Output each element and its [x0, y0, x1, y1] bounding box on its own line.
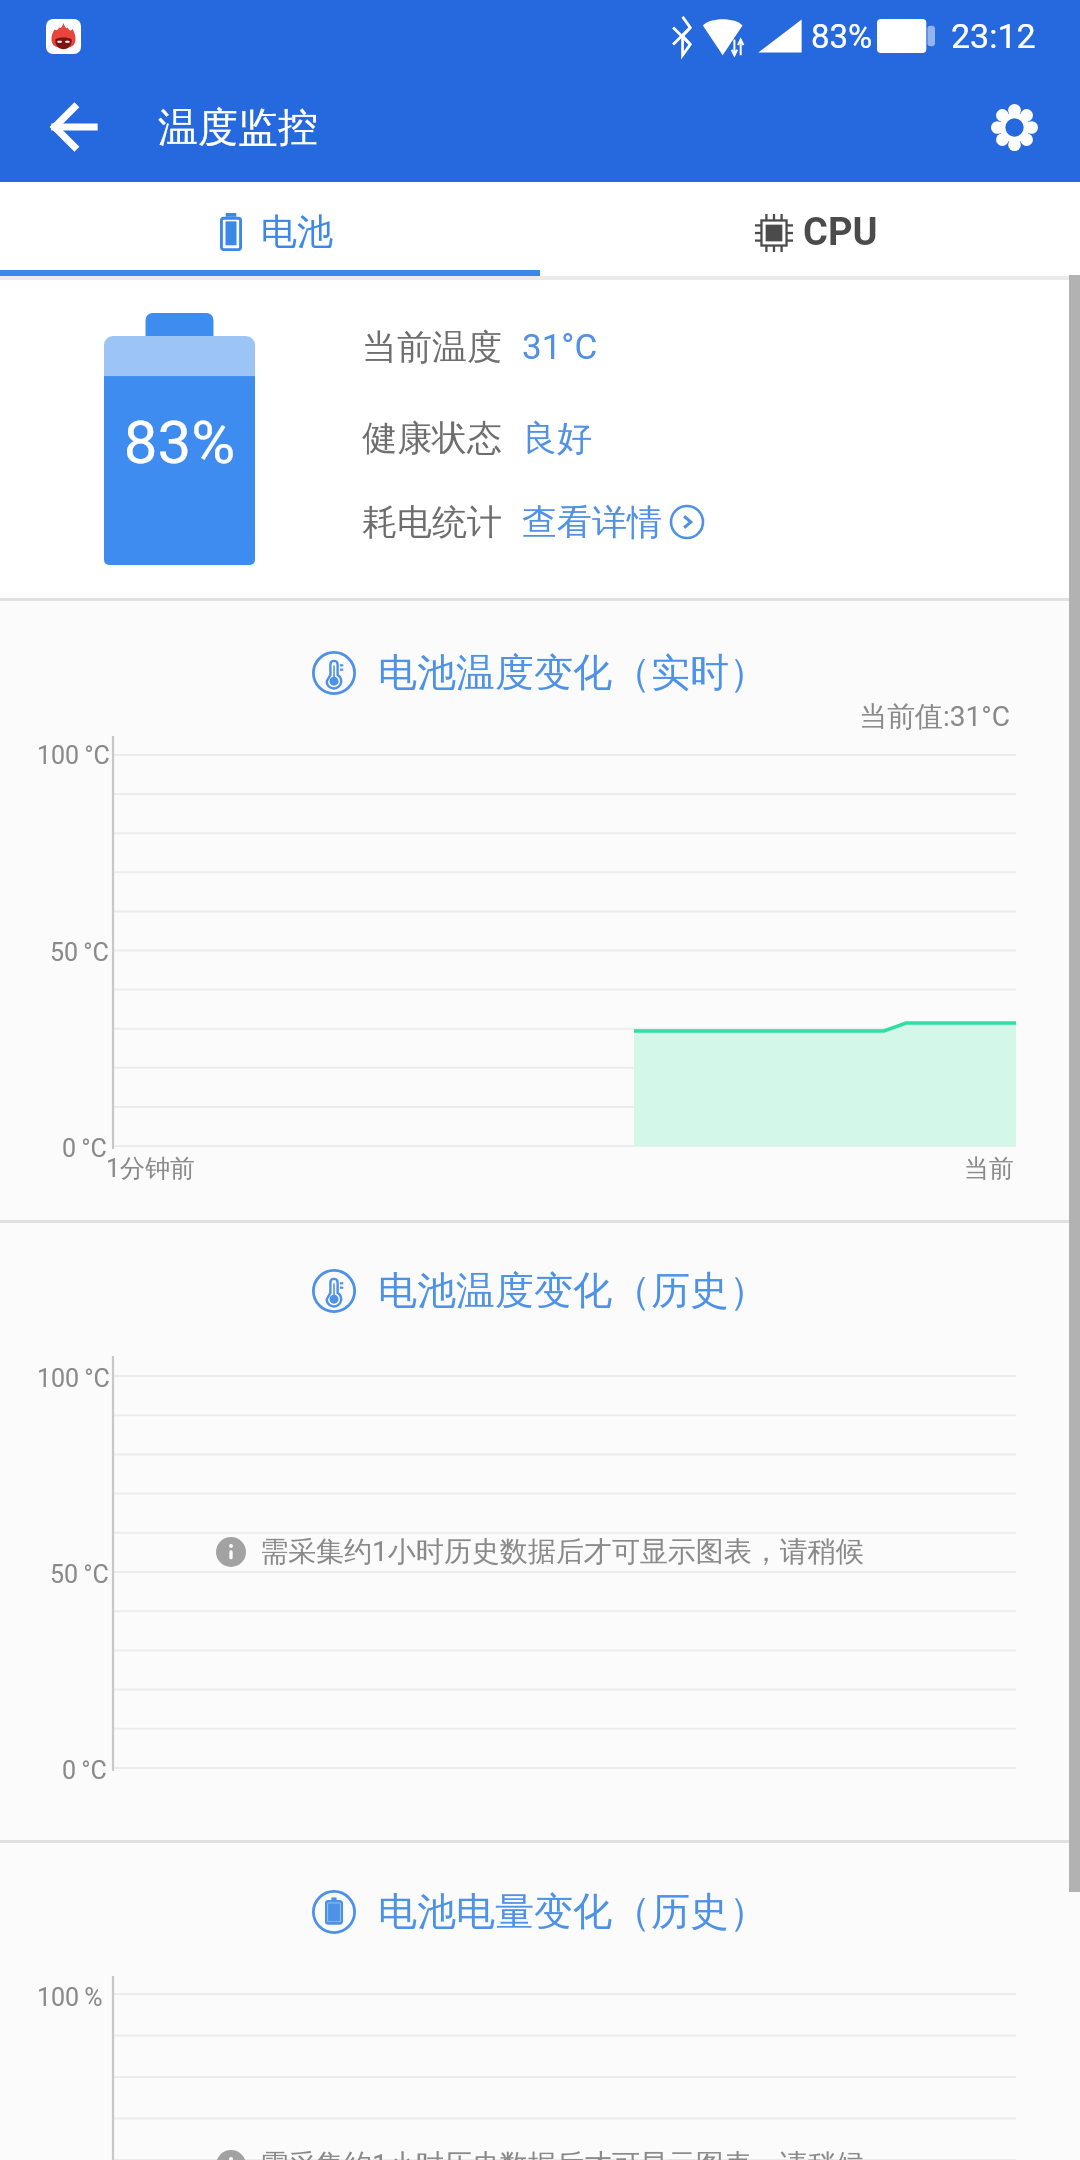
staticText: 50 °C [50, 938, 109, 967]
staticText: 温度监控 [158, 102, 318, 152]
staticText: 83% [811, 17, 873, 56]
staticText: 需采集约1小时历史数据后才可显示图表，请稍候 [260, 1534, 864, 1569]
staticText: CPU [803, 210, 878, 255]
staticText: 电池电量变化（历史） [378, 1887, 768, 1936]
staticText: 23:12 [951, 16, 1036, 56]
staticText: 电池温度变化（历史） [378, 1266, 768, 1315]
staticText: 100 % [37, 1983, 103, 2012]
button[interactable]: Back [26, 79, 122, 175]
staticText: 当前 [964, 1153, 1014, 1184]
staticText: 50 °C [50, 1560, 109, 1589]
staticText: 100 °C [37, 1364, 110, 1393]
staticText: 83% [104, 407, 255, 477]
staticText: 31°C [522, 327, 598, 368]
staticText: 查看详情 [522, 500, 662, 544]
staticText: 健康状态 [362, 416, 502, 460]
staticText: 0 °C [62, 1756, 107, 1785]
staticText: 当前值:31°C [859, 699, 1010, 734]
staticText: 1分钟前 [106, 1153, 196, 1184]
staticText: 当前温度 [362, 325, 502, 369]
staticText: 电池 [261, 209, 333, 254]
staticText: 电池温度变化（实时） [378, 648, 768, 697]
staticText: 耗电统计 [362, 500, 502, 544]
staticText: 100 °C [37, 741, 110, 770]
button[interactable]: CPU [540, 182, 1080, 270]
button[interactable]: Settings [966, 79, 1062, 175]
button[interactable]: 电池 [0, 182, 540, 270]
staticText: 0 °C [62, 1134, 107, 1163]
staticText: 需采集约1小时历史数据后才可显示图表，请稍候 [260, 2147, 864, 2160]
button[interactable]: 耗电统计 [362, 500, 705, 544]
staticText: 良好 [522, 416, 592, 460]
